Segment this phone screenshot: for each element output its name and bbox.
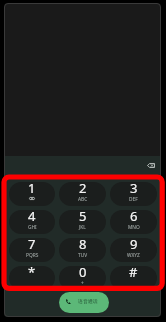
staticText: JKL [79,224,86,231]
button[interactable]: 4 [9,210,55,234]
staticText: 7 [28,238,36,253]
button[interactable]: # [110,266,157,290]
staticText: 3 [130,182,138,197]
staticText: GHI [28,224,37,231]
staticText: MNO [128,224,140,231]
button[interactable]: 5 [59,210,106,234]
staticText: ABC [78,196,88,203]
staticText: 8 [79,238,87,253]
staticText: 0 [79,266,87,281]
button[interactable]: 7 [9,238,55,262]
button[interactable]: 6 [110,210,157,234]
staticText: * [28,266,36,281]
staticText: 9 [130,238,138,253]
button[interactable]: 8 [59,238,106,262]
staticText: # [129,266,138,281]
button[interactable]: 0 [59,266,106,290]
staticText: + [81,280,84,287]
staticText: 语音通话 [78,298,98,304]
button[interactable]: 9 [110,238,157,262]
button[interactable]: Backspace [142,156,160,174]
button[interactable]: 3 [110,182,157,206]
staticText: 6 [130,210,138,225]
staticText: PQRS [26,252,39,259]
button[interactable]: * [9,266,55,290]
staticText: 1 [28,182,36,197]
staticText: TUV [78,252,88,259]
staticText: 2 [79,182,87,197]
button[interactable]: 1 [9,182,55,206]
button[interactable]: 2 [59,182,106,206]
staticText: DEF [129,196,138,203]
button[interactable]: 语音通话 [59,292,109,313]
staticText: 5 [79,210,87,225]
staticText: WXYZ [127,252,140,259]
staticText: 4 [28,210,36,225]
